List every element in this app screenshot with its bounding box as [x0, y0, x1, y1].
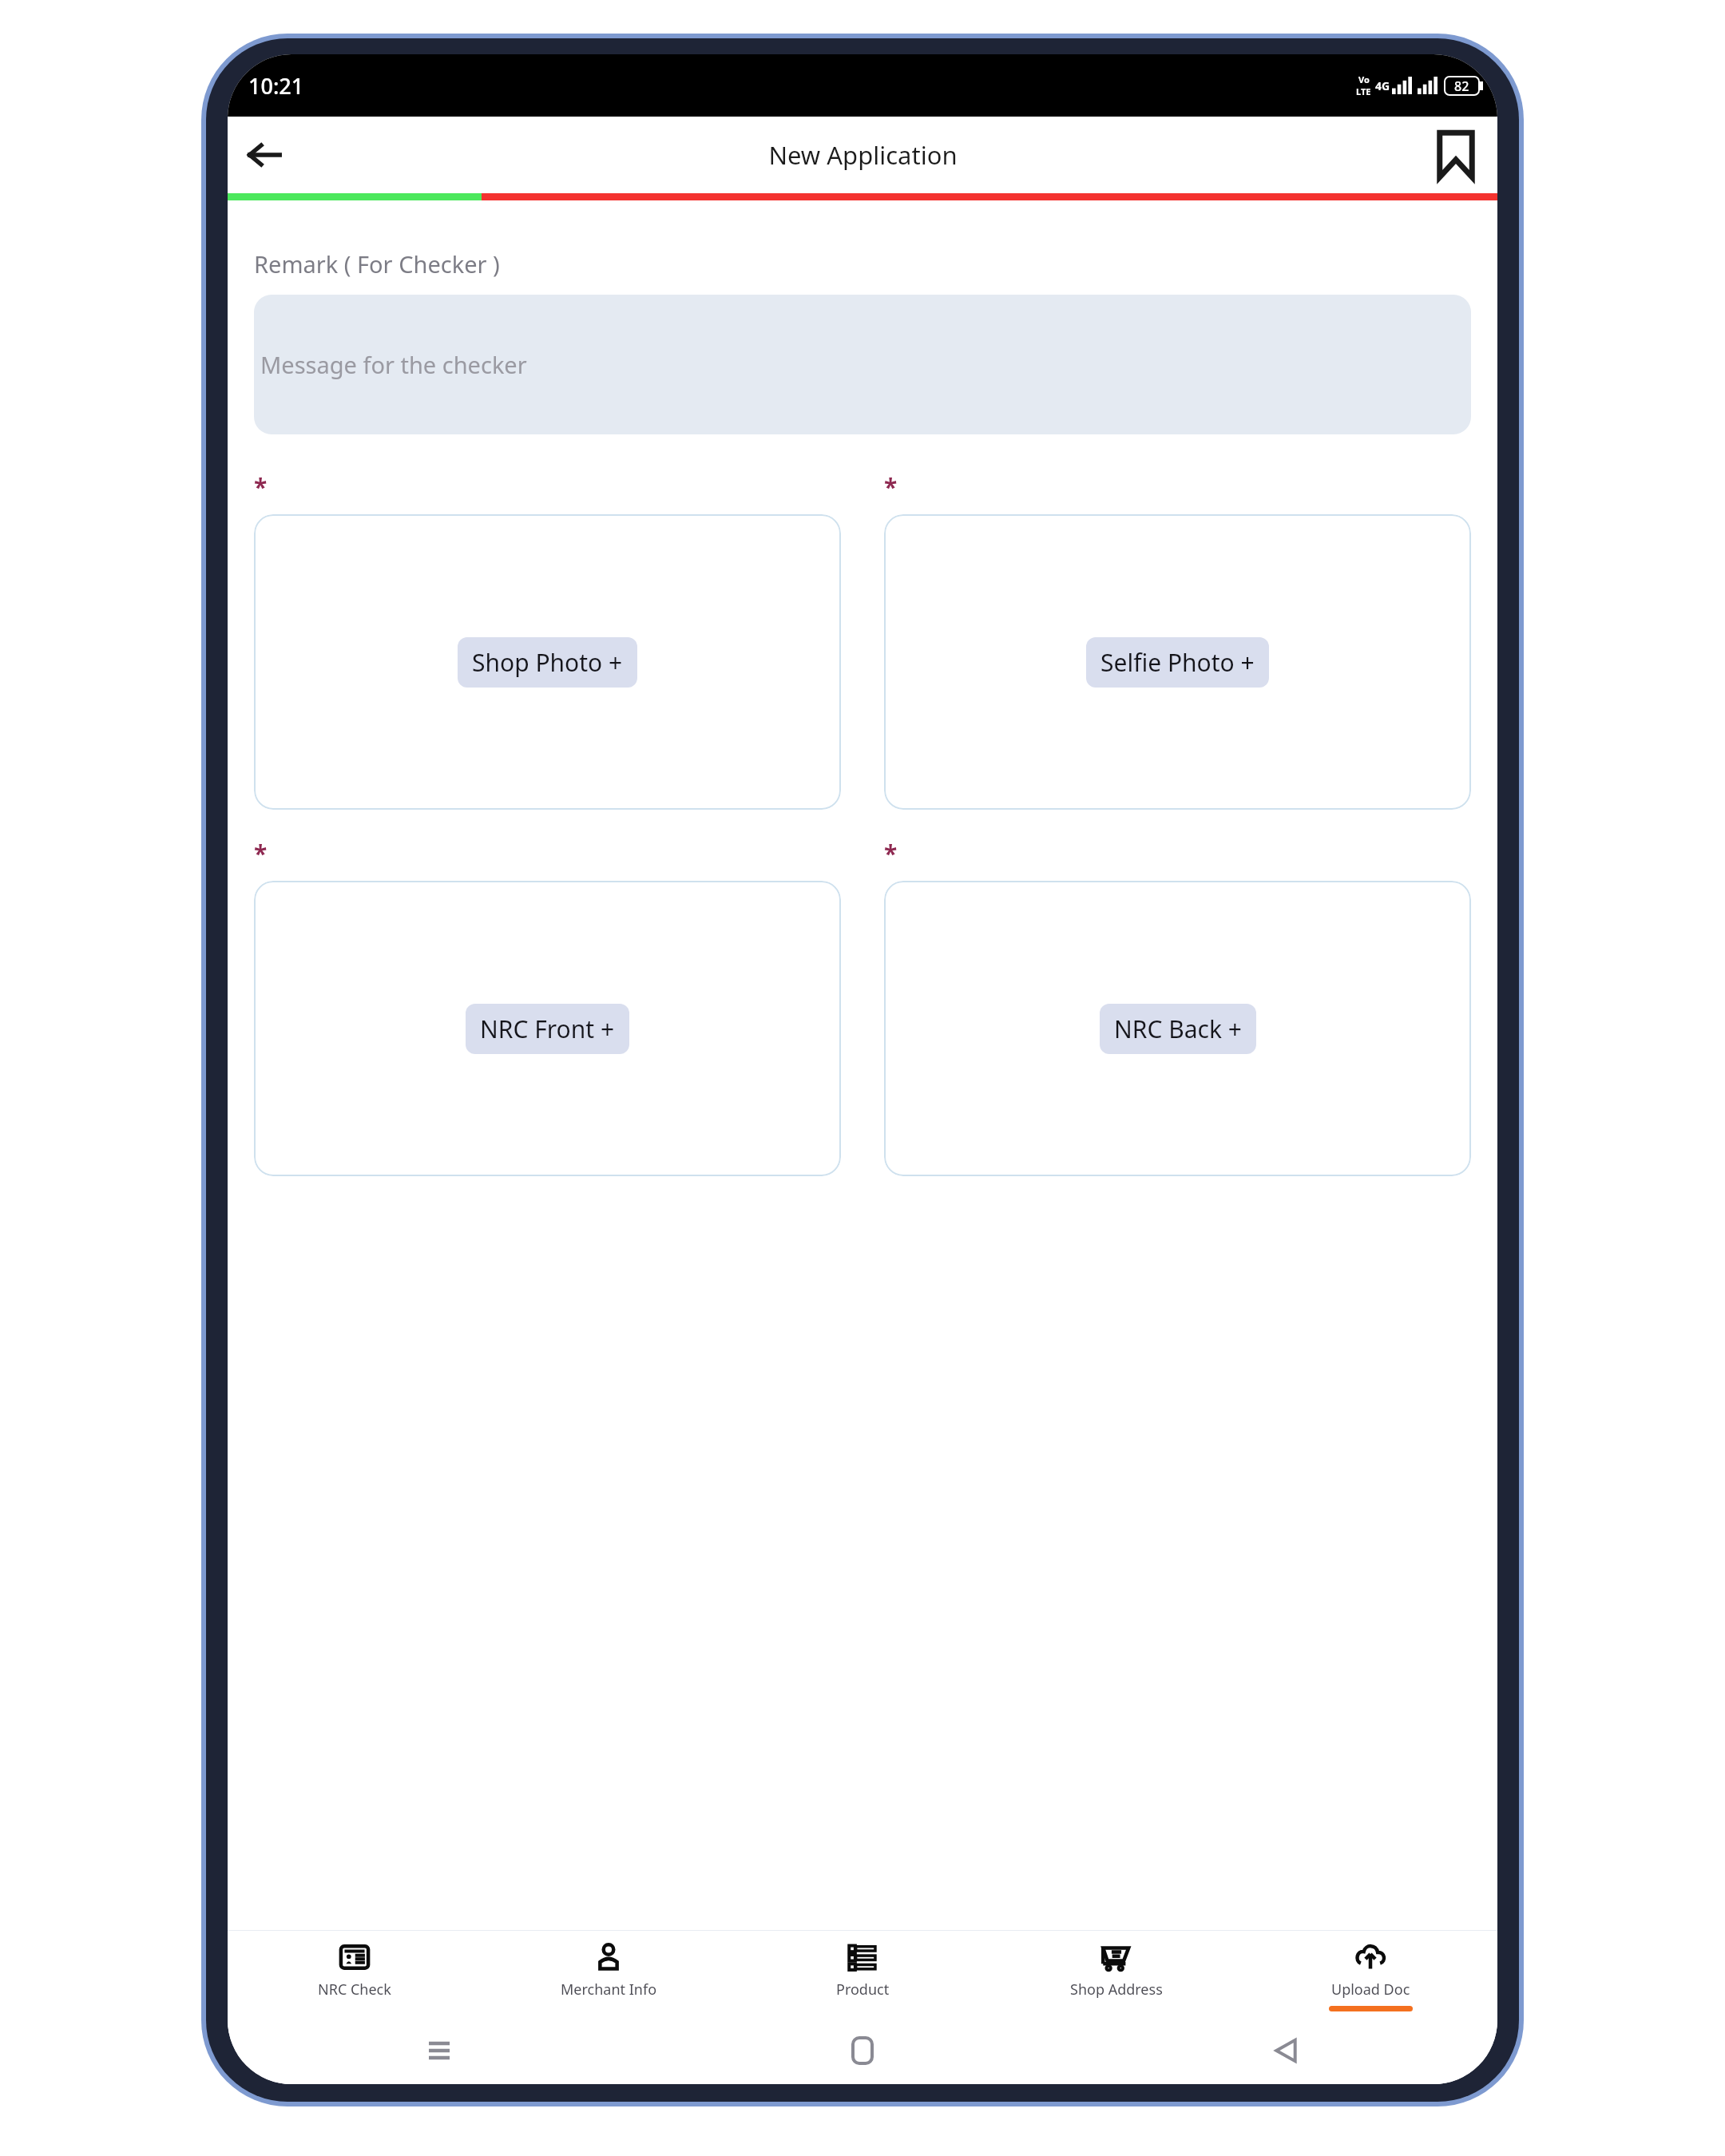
staticText: * — [884, 470, 898, 503]
button[interactable]: Selfie Photo + — [884, 514, 1471, 810]
button[interactable]: NRC Front + — [254, 881, 841, 1176]
staticText: NRC Check — [318, 1980, 391, 1999]
button[interactable]: Home — [651, 2017, 1074, 2084]
staticText: 4G — [1375, 78, 1390, 93]
button[interactable]: Back — [1074, 2017, 1497, 2084]
staticText: NRC Back + — [1114, 1013, 1242, 1045]
staticText: Selfie Photo + — [1100, 646, 1255, 679]
button[interactable]: Shop Address — [989, 1931, 1243, 2017]
staticText: New Application — [768, 138, 958, 172]
button[interactable]: Shop Photo + — [254, 514, 841, 810]
button[interactable]: Message for the checker — [254, 295, 1471, 434]
staticText: Upload Doc — [1331, 1980, 1410, 1999]
button[interactable]: Merchant Info — [482, 1931, 736, 2017]
staticText: Shop Address — [1070, 1980, 1163, 1999]
staticText: Remark ( For Checker ) — [254, 248, 500, 279]
staticText: LTE — [1356, 85, 1371, 97]
staticText: 10:21 — [248, 71, 304, 101]
button[interactable]: Product — [736, 1931, 989, 2017]
button[interactable]: Back — [236, 126, 293, 184]
button[interactable]: Recents — [228, 2017, 651, 2084]
button[interactable]: NRC Check — [228, 1931, 482, 2017]
button[interactable]: NRC Back + — [884, 881, 1471, 1176]
staticText: Message for the checker — [260, 349, 527, 380]
staticText: * — [254, 837, 268, 870]
staticText: Product — [836, 1980, 890, 1999]
staticText: NRC Front + — [480, 1013, 615, 1045]
staticText: Vo — [1358, 73, 1370, 85]
staticText: Shop Photo + — [472, 646, 623, 679]
button[interactable]: Bookmark — [1427, 126, 1485, 184]
staticText: * — [884, 837, 898, 870]
button[interactable]: Upload Doc — [1243, 1931, 1497, 2017]
staticText: * — [254, 470, 268, 503]
staticText: 82 — [1454, 77, 1469, 95]
staticText: Merchant Info — [561, 1980, 657, 1999]
